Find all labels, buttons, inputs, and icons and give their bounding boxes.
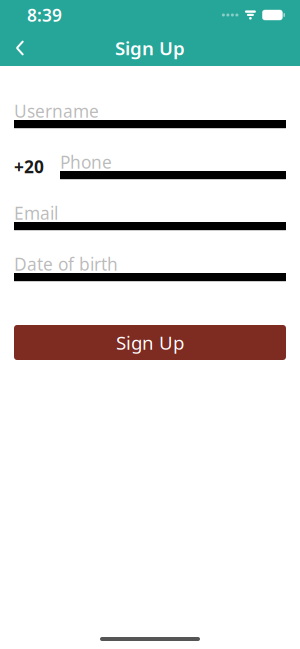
staticText: Username [14,99,99,122]
staticText: Sign Up [116,330,184,355]
button[interactable]: Back [0,30,40,66]
staticText: 8:39 [27,3,62,26]
staticText: Email [14,201,58,224]
staticText: Date of birth [14,252,118,275]
staticText: +20 [14,155,44,178]
staticText: Sign Up [115,36,185,60]
button[interactable]: Sign Up [14,325,286,360]
staticText: Phone [60,150,112,173]
